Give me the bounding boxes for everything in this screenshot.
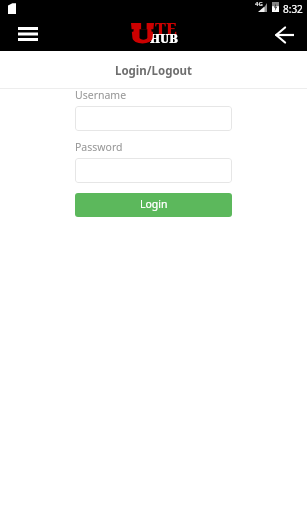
staticText: Password (75, 140, 123, 154)
staticText: Login/Logout (0, 63, 307, 79)
staticText: 8:32 (283, 2, 303, 16)
button[interactable]: Login (75, 193, 232, 217)
button[interactable]: Menu (6, 17, 49, 50)
button[interactable]: Back (264, 18, 304, 51)
button[interactable] (75, 158, 232, 183)
button[interactable] (75, 106, 232, 131)
staticText: Login (140, 197, 168, 211)
staticText: 4G (255, 0, 263, 8)
staticText: TE (155, 18, 177, 40)
staticText: HUB (150, 30, 178, 46)
staticText: Username (75, 88, 127, 102)
